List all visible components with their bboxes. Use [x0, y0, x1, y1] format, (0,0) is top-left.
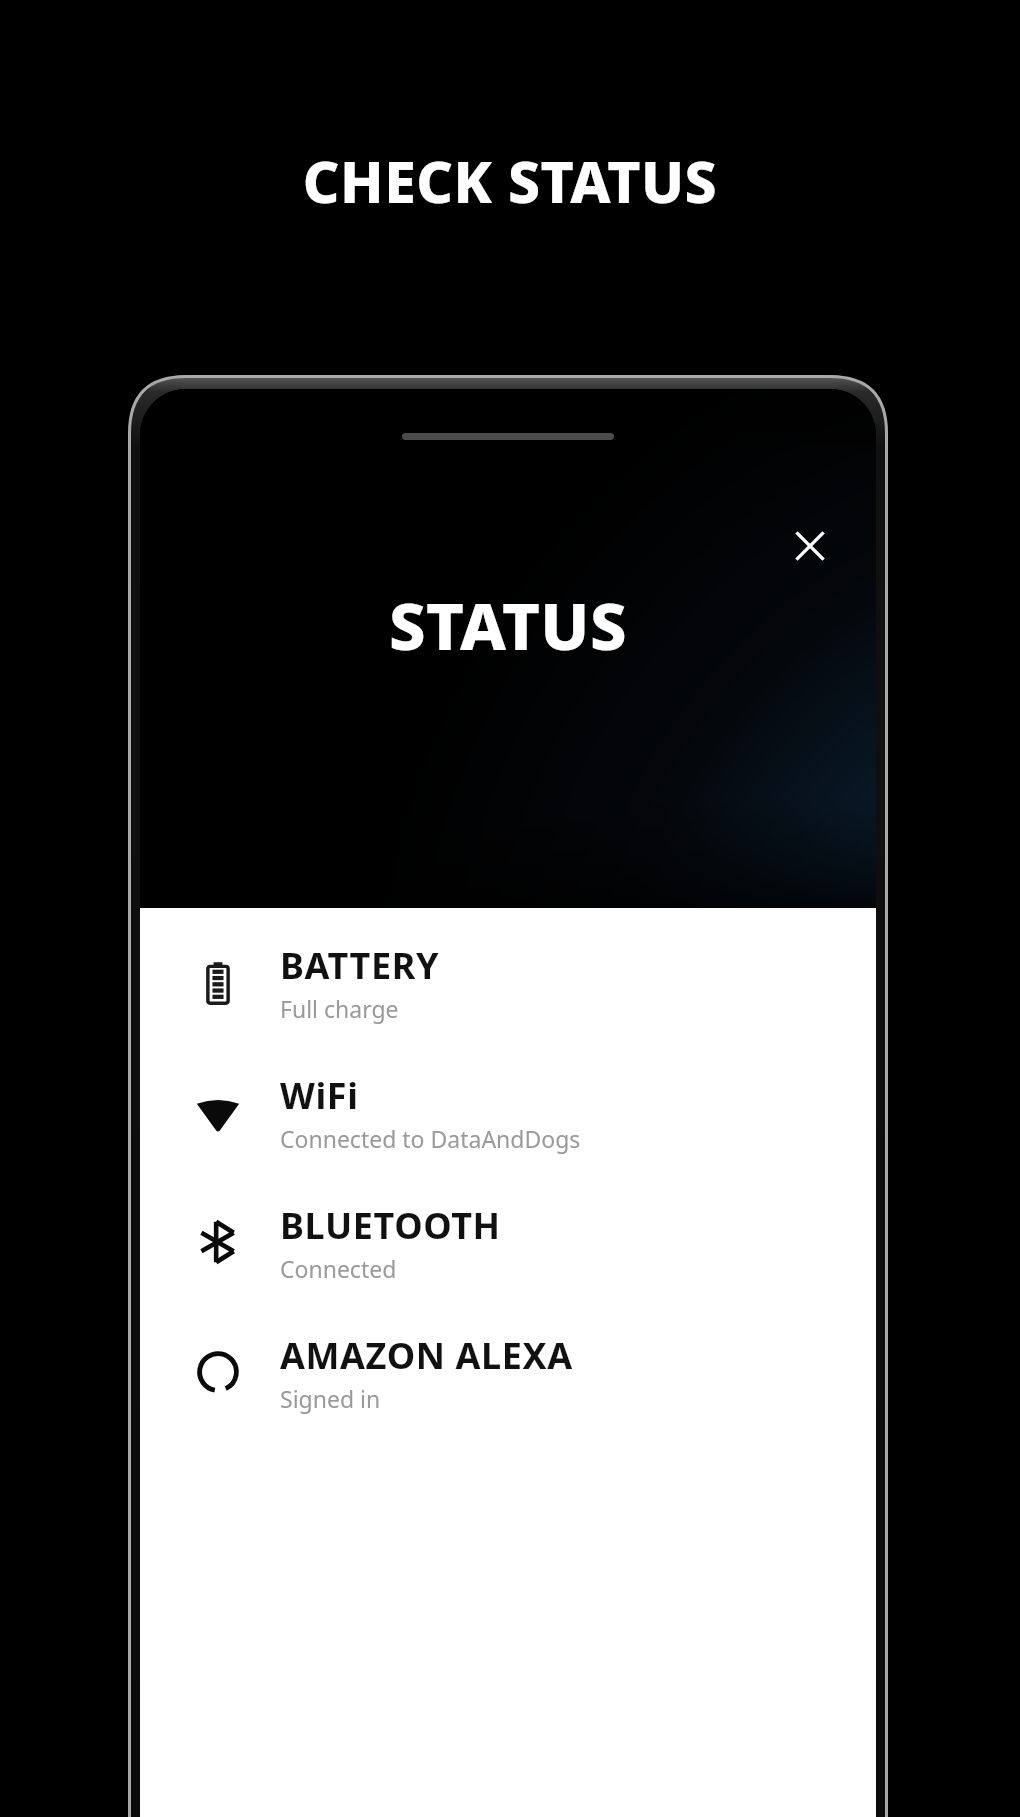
button[interactable]: Close — [768, 504, 852, 588]
button[interactable]: WiFi — [140, 1063, 876, 1161]
staticText: Signed in — [280, 1383, 381, 1414]
staticText: BATTERY — [280, 941, 440, 990]
button[interactable]: BATTERY — [140, 933, 876, 1031]
button[interactable]: BLUETOOTH — [140, 1193, 876, 1291]
staticText: CHECK STATUS — [0, 142, 1020, 220]
button[interactable]: AMAZON ALEXA — [140, 1323, 876, 1421]
staticText: BLUETOOTH — [280, 1201, 501, 1250]
staticText: Connected — [280, 1253, 397, 1284]
staticText: Connected to DataAndDogs — [280, 1123, 581, 1154]
staticText: AMAZON ALEXA — [280, 1331, 573, 1380]
staticText: WiFi — [280, 1071, 359, 1120]
staticText: STATUS — [140, 581, 876, 670]
staticText: Full charge — [280, 993, 399, 1024]
